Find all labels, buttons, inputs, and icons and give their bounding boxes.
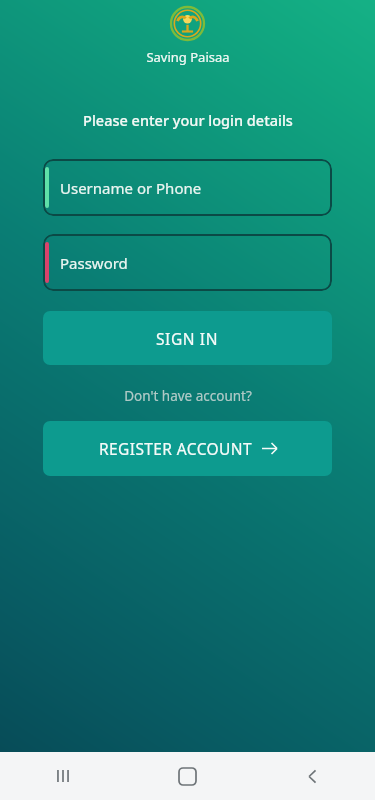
staticText: Saving Paisaa (146, 48, 230, 66)
button[interactable]: SIGN IN (43, 311, 332, 365)
staticText: Username or Phone (60, 178, 202, 198)
button[interactable]: Username or Phone (43, 159, 332, 216)
button[interactable]: Recent apps (0, 752, 125, 800)
button[interactable]: REGISTER ACCOUNT (43, 421, 332, 476)
staticText: SIGN IN (156, 328, 219, 349)
other: Saving Paisaa logo (171, 7, 204, 40)
staticText: Please enter your login details (83, 110, 293, 130)
button[interactable]: Password (43, 234, 332, 291)
staticText: REGISTER ACCOUNT (99, 438, 253, 459)
staticText: Password (60, 253, 128, 273)
staticText: Don't have account? (124, 387, 252, 405)
button[interactable]: Home (125, 752, 250, 800)
button[interactable]: Back (250, 752, 375, 800)
